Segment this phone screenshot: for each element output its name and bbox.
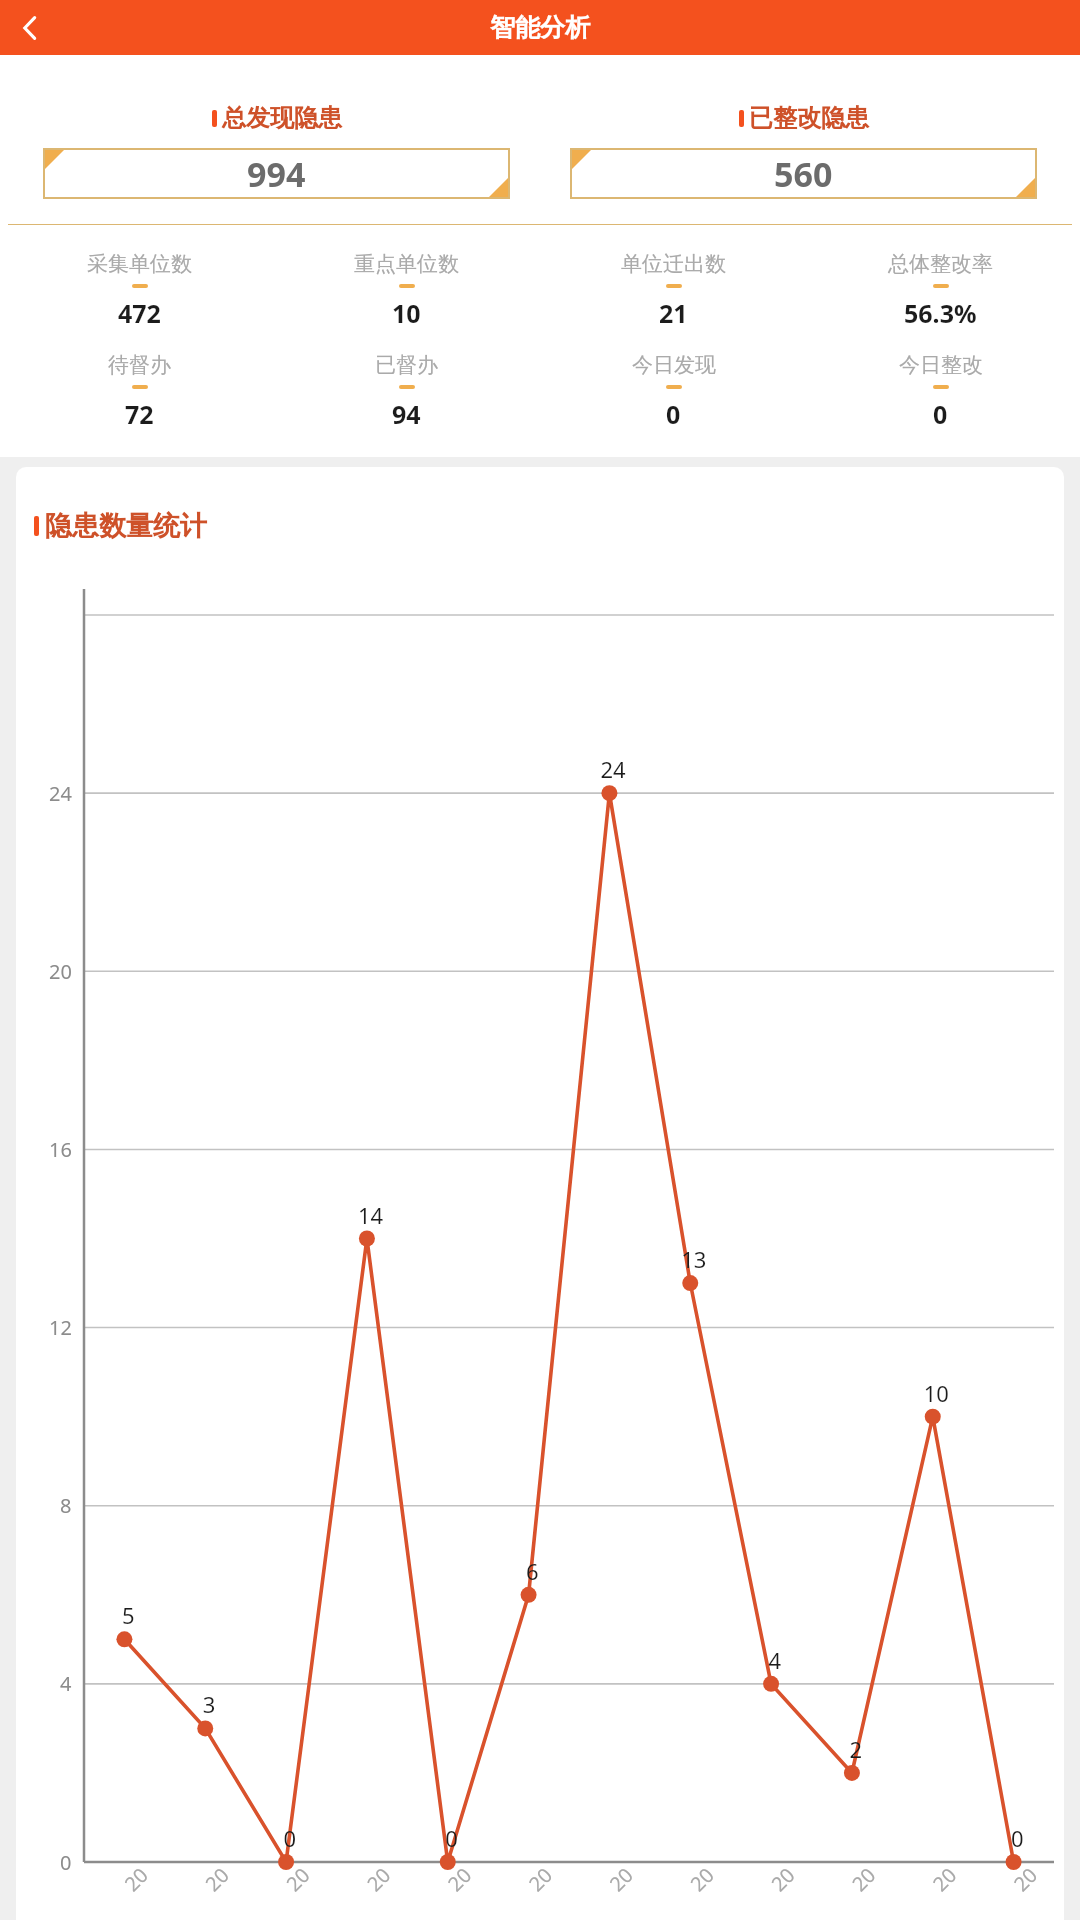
- staticText: 重点单位数: [354, 251, 459, 277]
- staticText: 今日整改: [899, 352, 983, 378]
- button[interactable]: 待督办: [6, 352, 273, 431]
- staticText: 已督办: [375, 352, 438, 378]
- button[interactable]: 今日整改: [807, 352, 1074, 431]
- button[interactable]: 今日发现: [540, 352, 807, 431]
- staticText: 21: [659, 296, 688, 330]
- staticText: 采集单位数: [87, 251, 192, 277]
- button[interactable]: 已督办: [273, 352, 540, 431]
- staticText: 今日发现: [632, 352, 716, 378]
- staticText: 总发现隐患: [222, 103, 342, 133]
- button[interactable]: 总体整改率: [807, 251, 1074, 330]
- staticText: 56.3%: [904, 296, 977, 330]
- button[interactable]: 重点单位数: [273, 251, 540, 330]
- staticText: 0: [666, 397, 681, 431]
- staticText: 隐患数量统计: [45, 509, 207, 543]
- staticText: 10: [392, 296, 421, 330]
- staticText: 472: [118, 296, 161, 330]
- button[interactable]: 单位迁出数: [540, 251, 807, 330]
- staticText: 72: [125, 397, 154, 431]
- staticText: 已整改隐患: [749, 103, 869, 133]
- staticText: 560: [774, 151, 833, 197]
- staticText: 0: [933, 397, 948, 431]
- staticText: 待督办: [108, 352, 171, 378]
- staticText: 智能分析: [490, 12, 590, 43]
- button[interactable]: 采集单位数: [6, 251, 273, 330]
- button[interactable]: 总发现隐患: [44, 103, 509, 198]
- button[interactable]: Back: [8, 6, 52, 50]
- staticText: 994: [247, 151, 306, 197]
- button[interactable]: 已整改隐患: [571, 103, 1036, 198]
- staticText: 总体整改率: [888, 251, 993, 277]
- staticText: 单位迁出数: [621, 251, 726, 277]
- staticText: 94: [392, 397, 421, 431]
